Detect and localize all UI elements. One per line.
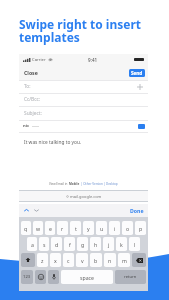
- staticText: z: [41, 257, 44, 264]
- button[interactable]: Send: [129, 69, 145, 77]
- button[interactable]: u: [96, 221, 107, 235]
- staticText: To:: [24, 83, 31, 90]
- button[interactable]: Next field: [33, 207, 40, 214]
- button[interactable]: Done: [129, 205, 145, 216]
- staticText: d: [55, 241, 59, 248]
- staticText: | Other Version | Desktop: [80, 182, 118, 186]
- button[interactable]: Emoji: [35, 270, 46, 284]
- staticText: r: [61, 225, 64, 232]
- button[interactable]: q: [21, 221, 31, 235]
- staticText: j: [108, 241, 110, 248]
- button[interactable]: Return: [115, 270, 146, 284]
- button[interactable]: p: [135, 221, 146, 235]
- staticText: f: [69, 241, 71, 248]
- staticText: v: [81, 257, 84, 264]
- staticText: h: [94, 241, 98, 248]
- staticText: It was nice talking to you.: [24, 139, 82, 146]
- button[interactable]: e: [45, 221, 55, 235]
- button[interactable]: j: [103, 237, 114, 251]
- button[interactable]: z: [37, 253, 48, 267]
- staticText: space: [80, 274, 95, 281]
- staticText: p: [139, 225, 143, 232]
- button[interactable]: Close: [23, 67, 39, 78]
- button[interactable]: g: [77, 237, 88, 251]
- staticText: Send: [131, 70, 143, 76]
- button[interactable]: h: [90, 237, 101, 251]
- button[interactable]: a: [27, 237, 37, 251]
- staticText: y: [87, 225, 90, 232]
- button[interactable]: m: [118, 253, 130, 267]
- staticText: m: [122, 257, 127, 264]
- staticText: 123: [23, 274, 31, 280]
- button[interactable]: c: [63, 253, 74, 267]
- staticText: c: [67, 257, 70, 264]
- staticText: o: [126, 225, 130, 232]
- button[interactable]: v: [76, 253, 88, 267]
- staticText: q: [24, 225, 28, 232]
- staticText: n: [108, 257, 112, 264]
- button[interactable]: space: [61, 270, 113, 284]
- staticText: mail.google.com: [70, 194, 102, 199]
- button[interactable]: f: [64, 237, 75, 251]
- button[interactable]: Numbers: [21, 270, 33, 284]
- staticText: return: [124, 274, 137, 280]
- staticText: e: [49, 225, 52, 232]
- button[interactable]: t: [70, 221, 81, 235]
- staticText: Cc/Bcc:: [24, 96, 41, 103]
- button[interactable]: n: [104, 253, 116, 267]
- staticText: x: [54, 257, 57, 264]
- button[interactable]: s: [39, 237, 49, 251]
- button[interactable]: x: [50, 253, 61, 267]
- staticText: 9:41: [88, 57, 98, 63]
- button[interactable]: y: [83, 221, 94, 235]
- button[interactable]: k: [116, 237, 127, 251]
- button[interactable]: o: [122, 221, 133, 235]
- staticText: b: [94, 257, 98, 264]
- staticText: t: [75, 225, 77, 232]
- staticText: Done: [130, 207, 144, 214]
- button[interactable]: Add recipient: [137, 84, 143, 90]
- staticText: i: [114, 225, 116, 232]
- button[interactable]: l: [129, 237, 140, 251]
- staticText: w: [36, 225, 41, 232]
- button[interactable]: b: [90, 253, 102, 267]
- staticText: g: [81, 241, 85, 248]
- button[interactable]: w: [33, 221, 43, 235]
- button[interactable]: i: [109, 221, 120, 235]
- staticText: Close: [24, 69, 38, 76]
- button[interactable]: Backspace: [132, 253, 146, 267]
- staticText: Mobile: [69, 182, 80, 186]
- staticText: a: [31, 241, 34, 248]
- button[interactable]: Dictation: [48, 270, 59, 284]
- staticText: s: [43, 241, 46, 248]
- button[interactable]: Previous field: [23, 207, 30, 214]
- staticText: Carrier: [32, 57, 46, 63]
- button[interactable]: Insert template: [138, 123, 145, 130]
- button[interactable]: d: [51, 237, 62, 251]
- staticText: u: [100, 225, 104, 232]
- staticText: Subject:: [24, 110, 42, 117]
- staticText: View Email in: [49, 182, 69, 186]
- button[interactable]: r: [57, 221, 68, 235]
- staticText: nic: [23, 123, 30, 129]
- staticText: Swipe right to insert templates: [19, 16, 159, 46]
- staticText: l: [134, 241, 136, 248]
- button[interactable]: Shift: [21, 253, 35, 267]
- staticText: k: [120, 241, 123, 248]
